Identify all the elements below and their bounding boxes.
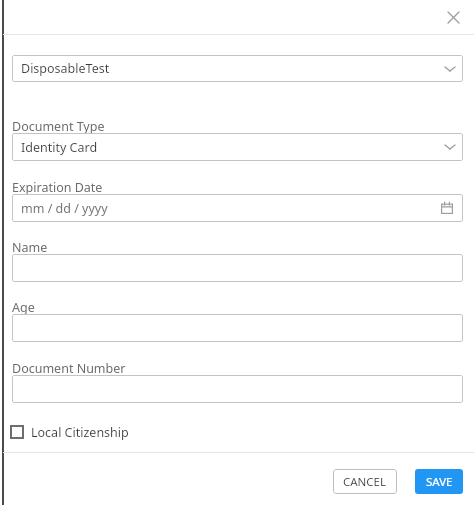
button[interactable] — [12, 375, 463, 403]
staticText: Expiration Date — [12, 179, 103, 196]
staticText: Document Number — [12, 360, 126, 377]
other: Pick date — [440, 201, 454, 215]
button[interactable]: mm / dd / yyyy — [12, 194, 463, 222]
staticText: Age — [12, 299, 35, 316]
button[interactable]: Local Citizenship — [10, 420, 129, 444]
staticText: mm / dd / yyyy — [21, 200, 108, 217]
button[interactable]: Close — [440, 4, 466, 30]
staticText: SAVE — [426, 474, 453, 490]
staticText: DisposableTest — [21, 60, 110, 77]
staticText: Local Citizenship — [31, 424, 129, 441]
button[interactable]: DisposableTest — [12, 55, 463, 82]
staticText: Name — [12, 239, 48, 256]
staticText: CANCEL — [343, 474, 387, 490]
button[interactable]: SAVE — [415, 469, 463, 494]
staticText: Identity Card — [21, 139, 98, 156]
staticText: Document Type — [12, 118, 105, 135]
button[interactable]: Identity Card — [12, 133, 463, 161]
button[interactable] — [12, 254, 463, 282]
button[interactable] — [12, 314, 463, 342]
button[interactable]: CANCEL — [333, 469, 397, 494]
